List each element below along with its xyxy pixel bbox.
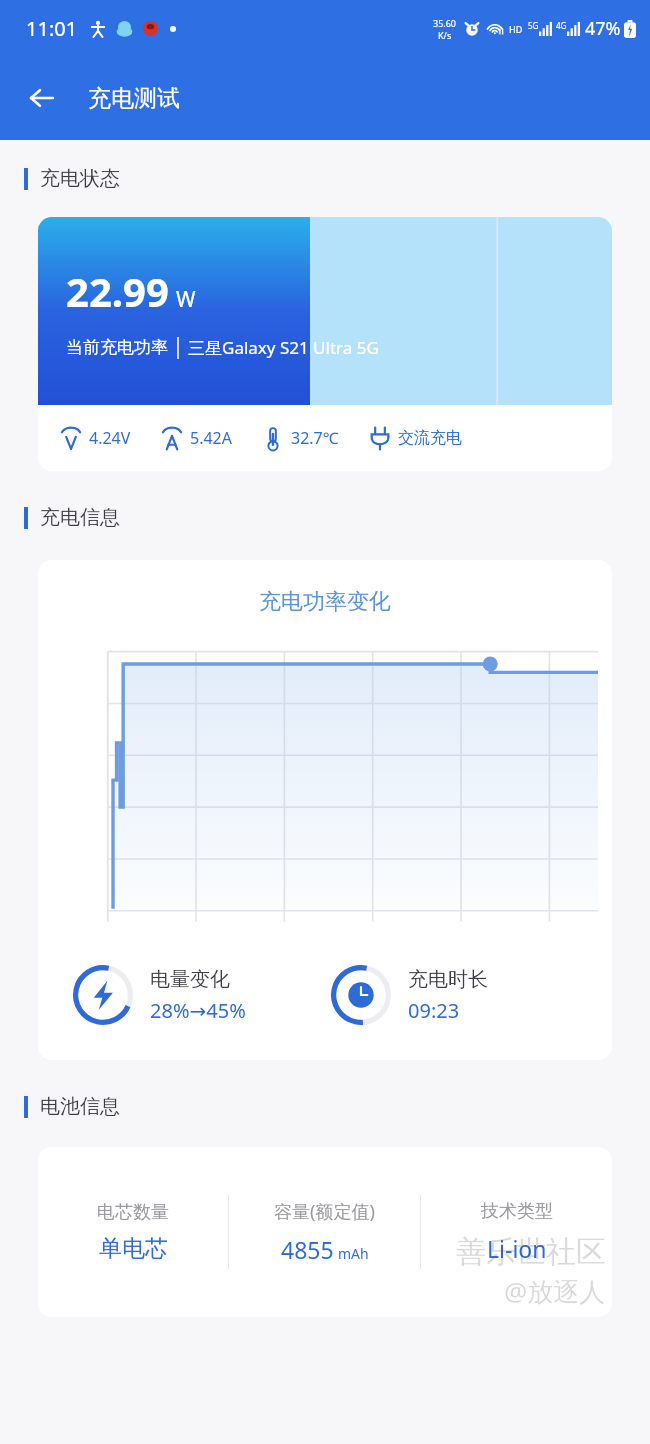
staticText: 4.24V (89, 427, 131, 449)
staticText: Li-ion (487, 1233, 547, 1264)
staticText: HD (509, 23, 523, 35)
staticText: 电池信息 (40, 1094, 120, 1119)
staticText: 电芯数量 (97, 1201, 169, 1224)
staticText: 充电状态 (40, 166, 120, 191)
staticText: 技术类型 (481, 1200, 553, 1223)
staticText: 充电时长 (408, 967, 488, 992)
staticText: 32.7℃ (291, 427, 339, 449)
staticText: 47% (585, 16, 621, 41)
staticText: 5.42A (190, 427, 232, 449)
button[interactable]: Back (18, 74, 66, 122)
button[interactable]: 22.99 (38, 217, 612, 471)
button[interactable]: 电芯数量 (38, 1147, 612, 1317)
staticText: 4G (556, 20, 567, 31)
button[interactable]: 充电功率变化 (38, 560, 612, 1060)
staticText: 容量(额定值) (274, 1199, 375, 1224)
staticText: 5G (528, 20, 539, 31)
staticText: 交流充电 (398, 428, 462, 448)
staticText: 单电芯 (99, 1234, 168, 1263)
staticText: 22.99 (66, 264, 169, 318)
button[interactable]: 电量变化 (72, 964, 330, 1026)
staticText: 三星Galaxy S21 Ultra 5G (188, 336, 379, 359)
staticText: K/s (438, 29, 452, 41)
staticText: 11:01 (26, 15, 78, 42)
staticText: 善乐世社区 (456, 1233, 606, 1271)
staticText: @放逐人 (504, 1273, 606, 1309)
staticText: W (176, 285, 196, 314)
staticText: 当前充电功率 (66, 337, 168, 358)
staticText: 充电信息 (40, 505, 120, 530)
button[interactable]: 充电时长 (330, 964, 588, 1026)
staticText: 28%→45% (150, 997, 246, 1024)
staticText: 35.60 (433, 17, 457, 29)
staticText: 电量变化 (150, 967, 230, 992)
staticText: 4855 (281, 1234, 334, 1265)
staticText: 充电功率变化 (259, 588, 391, 616)
staticText: mAh (338, 1244, 369, 1263)
staticText: 09:23 (408, 997, 460, 1024)
staticText: 充电测试 (88, 84, 180, 113)
